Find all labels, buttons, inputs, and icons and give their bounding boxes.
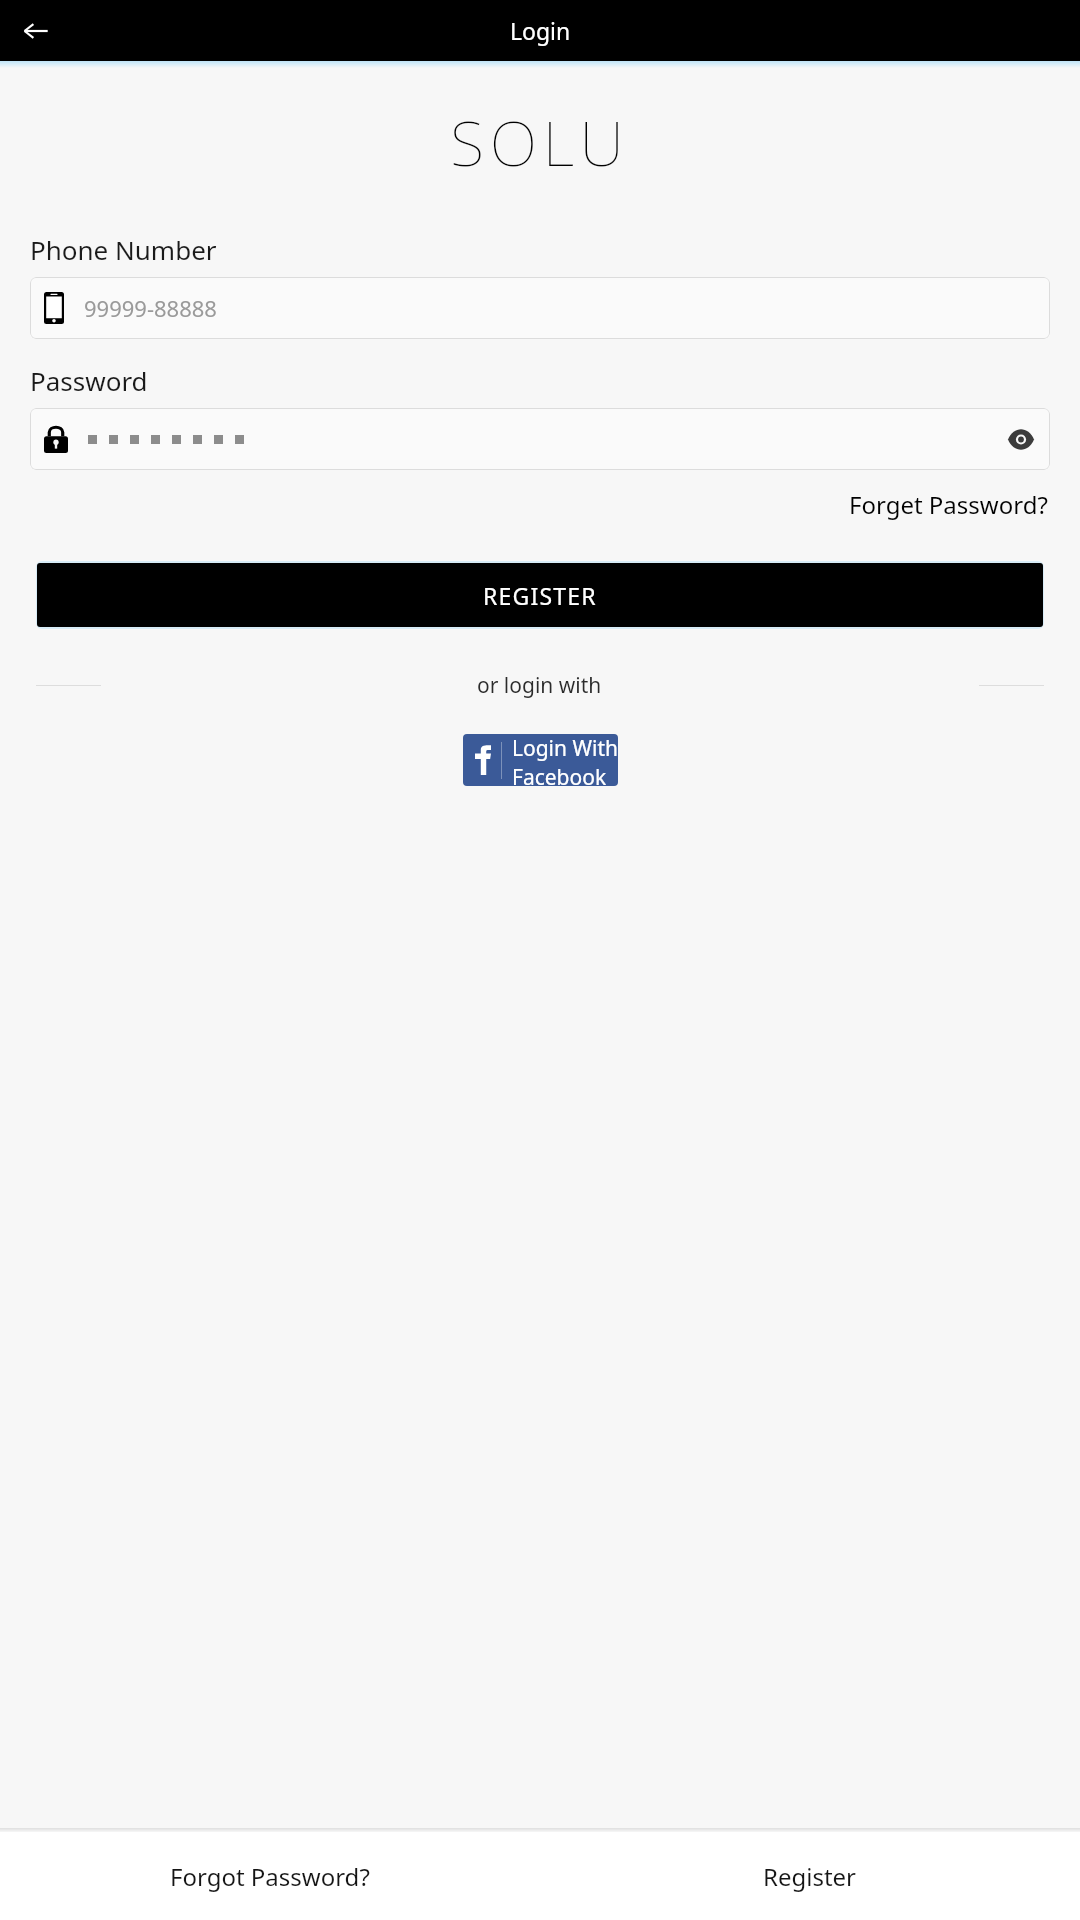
staticText: SOLU xyxy=(0,100,1080,184)
button[interactable]: Login With Facebook xyxy=(463,734,618,786)
staticText: Password xyxy=(30,363,148,398)
staticText: Login With Facebook xyxy=(512,734,618,786)
button[interactable]: Show password xyxy=(998,416,1044,462)
button[interactable]: Show password xyxy=(30,408,1050,470)
staticText: 99999-88888 xyxy=(84,293,217,323)
button[interactable]: Back xyxy=(12,7,60,55)
staticText: Forget Password? xyxy=(849,488,1048,521)
button[interactable]: Forgot Password? xyxy=(0,1832,540,1920)
staticText: Register xyxy=(763,1860,857,1893)
button[interactable]: Register xyxy=(540,1832,1080,1920)
staticText: Login xyxy=(510,15,571,46)
button[interactable]: Forget Password? xyxy=(847,484,1050,525)
staticText: Forgot Password? xyxy=(170,1860,370,1893)
staticText: or login with xyxy=(477,671,602,700)
button[interactable]: 99999-88888 xyxy=(30,277,1050,339)
staticText: Phone Number xyxy=(30,232,217,267)
button[interactable]: REGISTER xyxy=(37,563,1043,627)
staticText: REGISTER xyxy=(483,580,597,611)
